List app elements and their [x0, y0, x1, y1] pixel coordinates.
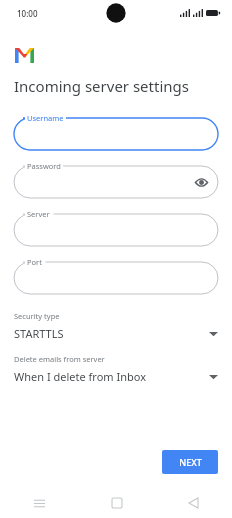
button[interactable]: NEXT [162, 450, 218, 474]
staticText: 10:00 [17, 8, 38, 19]
button[interactable]: Home [78, 488, 155, 518]
staticText: Password [27, 161, 61, 171]
staticText: Port [27, 257, 42, 267]
button[interactable]: Back [155, 488, 232, 518]
staticText: Security type [14, 311, 60, 321]
button[interactable]: Server [14, 206, 218, 246]
staticText: NEXT [179, 456, 202, 468]
staticText: Delete emails from server [14, 354, 105, 364]
button[interactable]: Security type [0, 311, 232, 341]
staticText: Username [27, 113, 64, 123]
button[interactable]: Password [14, 158, 218, 198]
button[interactable]: Delete emails from server [0, 354, 232, 384]
button[interactable]: Recent apps [0, 488, 78, 518]
button[interactable]: Show password [193, 174, 209, 190]
staticText: When I delete from Inbox [14, 369, 146, 384]
button[interactable]: Username [14, 110, 218, 150]
staticText: Incoming server settings [14, 76, 189, 96]
staticText: STARTTLS [14, 326, 64, 341]
staticText: Server [27, 209, 50, 219]
button[interactable]: Port [14, 254, 218, 294]
